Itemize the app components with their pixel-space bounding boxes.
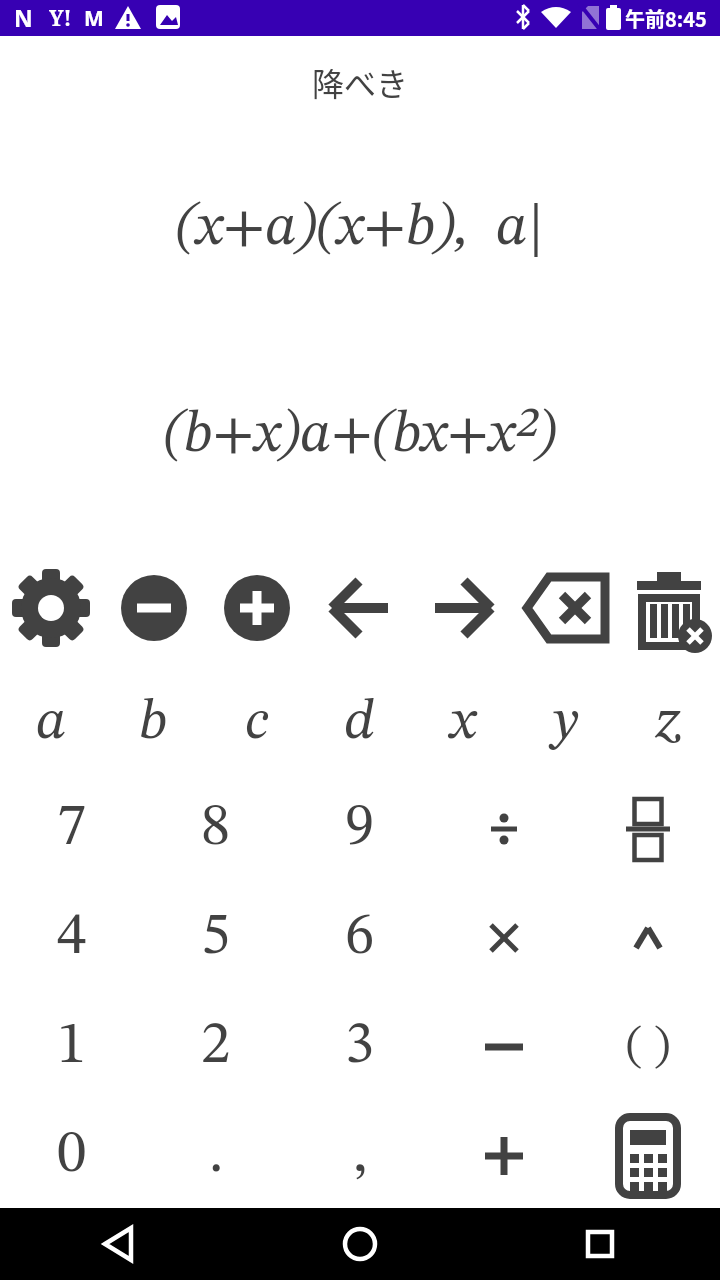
button[interactable] [308,560,411,656]
button[interactable]: . [144,1101,288,1210]
button[interactable] [205,560,308,656]
staticText: ( ) [626,1023,671,1071]
staticText: 5 [201,908,231,967]
button[interactable] [576,1101,720,1210]
staticText: 降べき [312,59,409,105]
staticText: 2 [201,1017,231,1076]
button[interactable]: 0 [0,1101,144,1210]
button[interactable] [617,560,720,656]
button[interactable] [0,1208,240,1280]
staticText: y [553,695,579,752]
staticText: x [450,695,476,752]
button[interactable]: 8 [144,774,288,883]
staticText: 0 [57,1126,87,1185]
button[interactable]: x [411,671,514,775]
button[interactable] [514,560,617,656]
button[interactable]: c [205,671,308,775]
button[interactable] [576,883,720,992]
staticText: 1 [57,1017,87,1076]
button[interactable]: 5 [144,883,288,992]
staticText: N [14,2,33,33]
staticText: (x+a)(x+b), a| [176,199,544,258]
staticText: 6 [345,908,375,967]
button[interactable] [432,1101,576,1210]
staticText: a [36,695,67,752]
button[interactable] [411,560,514,656]
staticText: d [344,695,375,752]
staticText: (b+x)a+(bx+x²) [164,407,557,465]
button[interactable]: 1 [0,992,144,1101]
staticText: 7 [57,799,87,858]
staticText: 午前8:45 [625,4,707,33]
button[interactable]: b [102,671,205,775]
button[interactable] [432,883,576,992]
button[interactable] [432,774,576,883]
staticText: . [209,1126,224,1185]
staticText: , [353,1126,368,1185]
button[interactable]: , [288,1101,432,1210]
button[interactable]: ( ) [576,992,720,1101]
button[interactable]: 7 [0,774,144,883]
staticText: 8 [201,799,231,858]
staticText: Y! [49,4,72,33]
button[interactable] [102,560,205,656]
staticText: 4 [57,908,87,967]
button[interactable]: a [0,671,102,775]
button[interactable]: z [617,671,720,775]
button[interactable] [240,1208,480,1280]
button[interactable]: 6 [288,883,432,992]
staticText: 3 [345,1017,375,1076]
button[interactable]: 3 [288,992,432,1101]
button[interactable]: y [514,671,617,775]
staticText: z [656,695,681,752]
staticText: 9 [345,799,375,858]
staticText: c [245,695,269,752]
staticText: M [84,4,104,33]
button[interactable]: 4 [0,883,144,992]
button[interactable]: 9 [288,774,432,883]
button[interactable]: d [308,671,411,775]
button[interactable]: 2 [144,992,288,1101]
button[interactable] [0,560,102,656]
staticText: b [139,695,168,752]
button[interactable] [480,1208,720,1280]
button[interactable] [432,992,576,1101]
button[interactable] [576,774,720,883]
